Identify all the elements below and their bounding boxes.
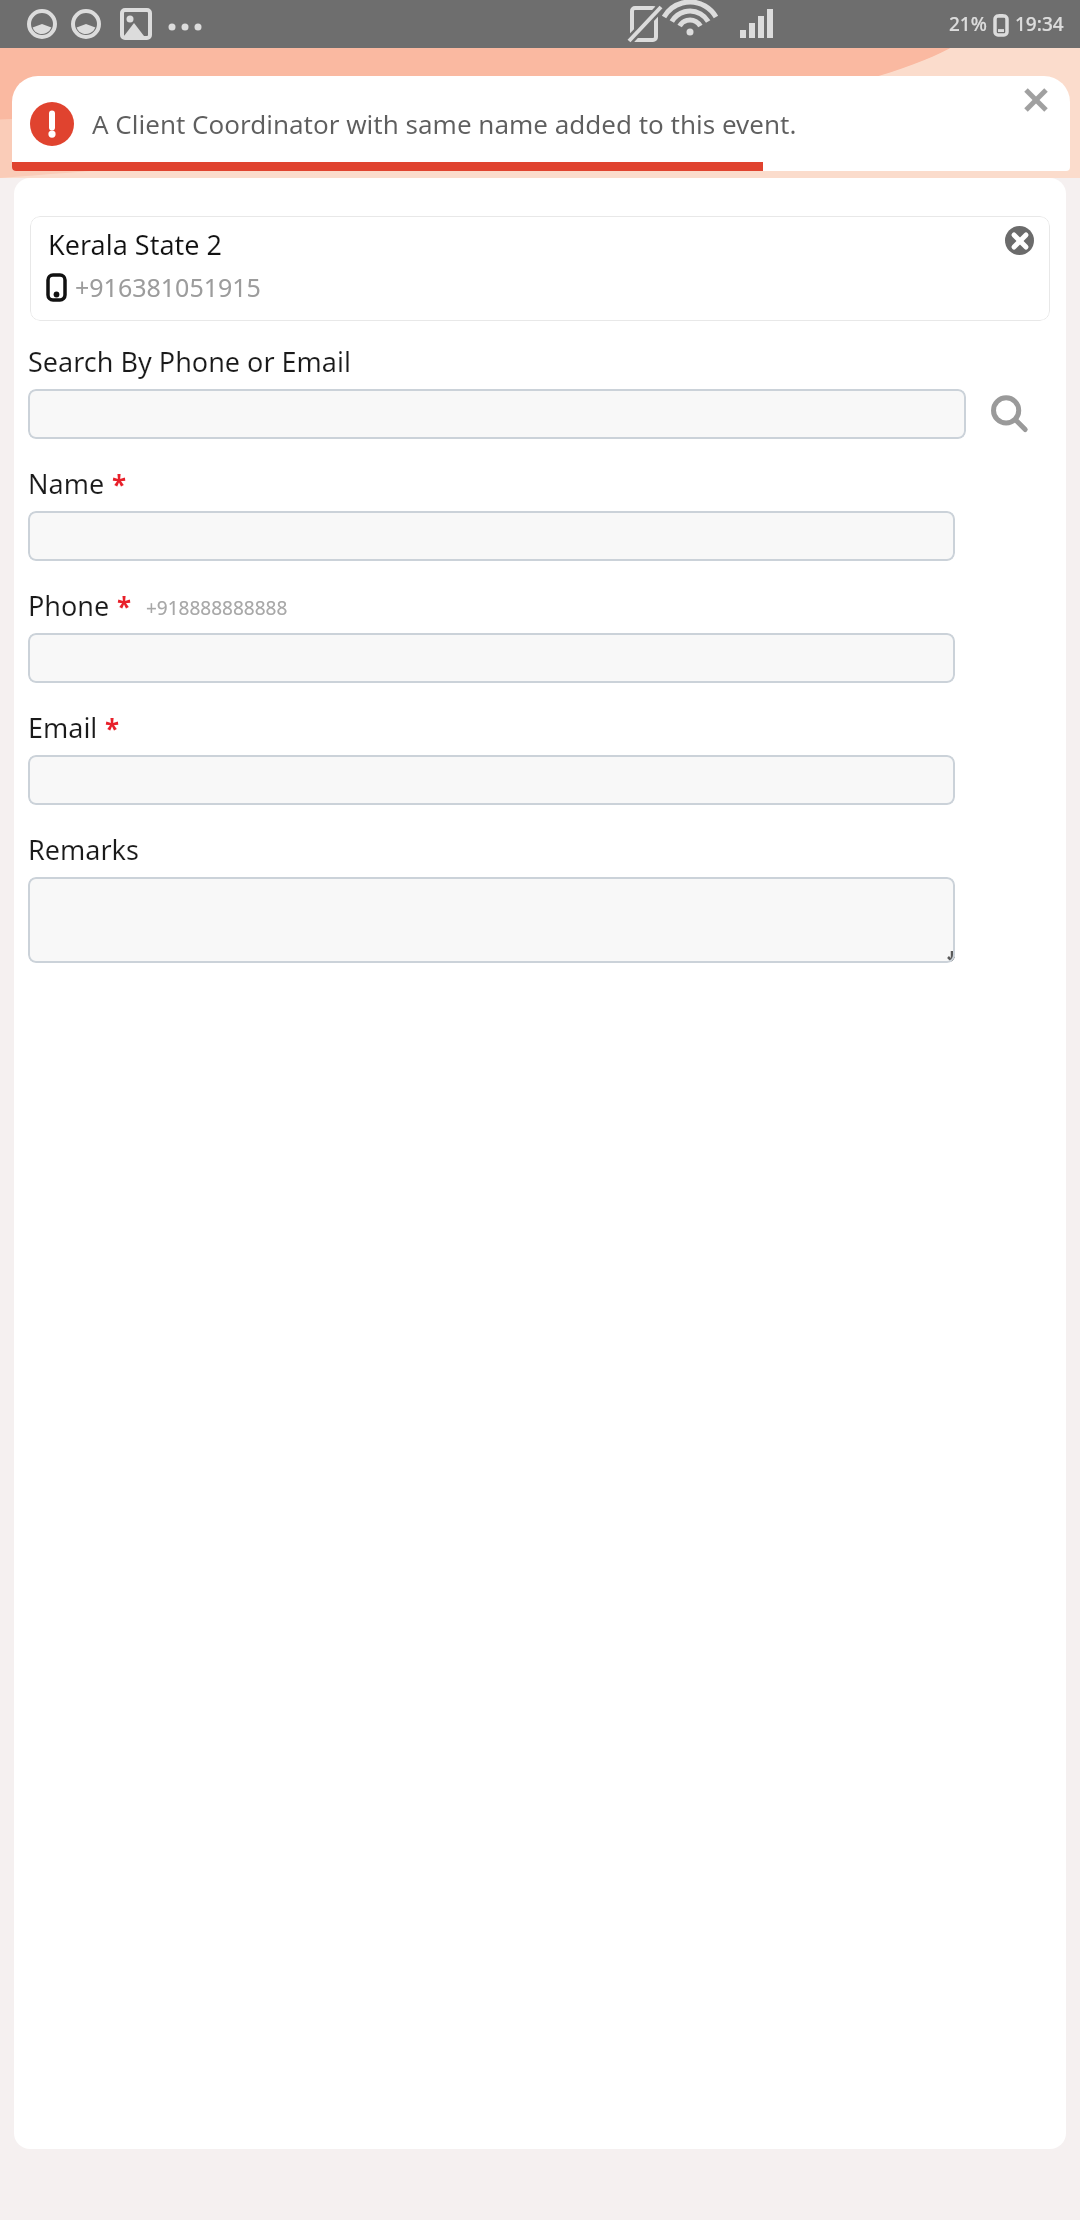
button[interactable]: Back: [34, 76, 108, 150]
button[interactable]: [28, 633, 955, 683]
button[interactable]: [28, 511, 955, 561]
staticText: +916381051915: [75, 270, 261, 304]
staticText: *: [105, 711, 120, 746]
button[interactable]: Remove contact: [1005, 226, 1034, 255]
staticText: A Client Coordinator with same name adde…: [92, 106, 1012, 141]
staticText: +918888888888: [146, 595, 288, 621]
staticText: 19:34: [1015, 11, 1064, 37]
staticText: 21%: [949, 11, 987, 37]
staticText: Phone: [28, 587, 110, 624]
button[interactable]: Kerala State 2: [30, 216, 1050, 321]
staticText: Email: [28, 709, 98, 746]
staticText: B00016446: [48, 311, 190, 321]
button[interactable]: [28, 877, 955, 963]
button[interactable]: [28, 389, 966, 439]
staticText: Event Tracker: [428, 91, 653, 136]
button[interactable]: Close: [1012, 76, 1060, 124]
button[interactable]: [28, 755, 955, 805]
staticText: *: [117, 589, 132, 624]
staticText: Name: [28, 465, 105, 502]
staticText: Kerala State 2: [48, 226, 222, 263]
button[interactable]: Search: [966, 389, 1052, 439]
staticText: Search By Phone or Email: [28, 343, 351, 380]
staticText: Remarks: [28, 831, 139, 868]
staticText: *: [112, 467, 127, 502]
button[interactable]: A Client Coordinator with same name adde…: [12, 76, 1070, 171]
